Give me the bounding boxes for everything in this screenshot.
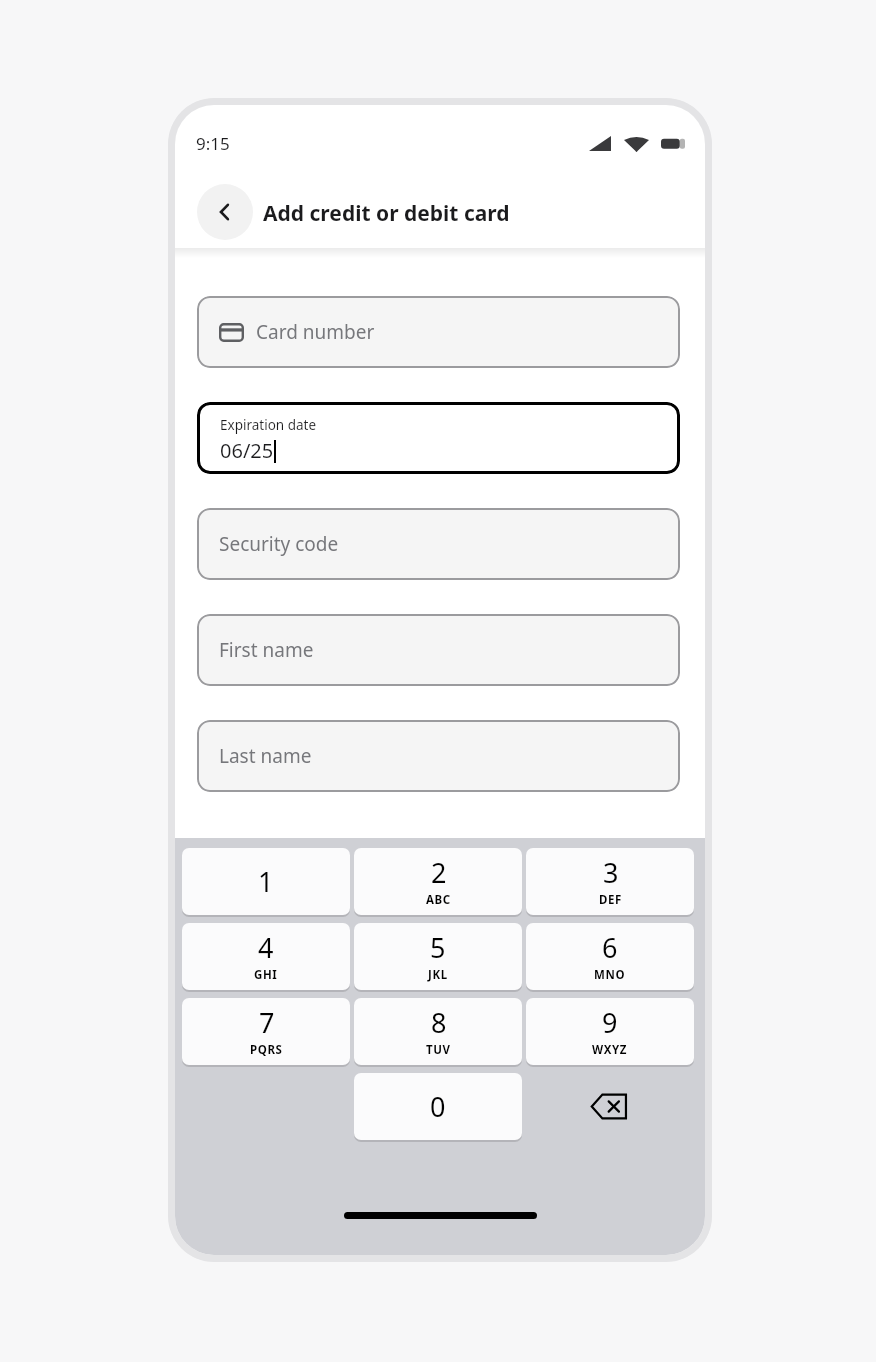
staticText: MNO xyxy=(594,967,626,983)
staticText: WXYZ xyxy=(592,1042,628,1058)
staticText: Expiration date xyxy=(220,416,317,434)
staticText: 06/25 xyxy=(220,437,274,464)
button[interactable]: 2 xyxy=(354,848,522,915)
staticText: Last name xyxy=(219,743,312,769)
staticText: 9 xyxy=(602,1004,618,1041)
button[interactable]: First name xyxy=(197,614,680,686)
staticText: 6 xyxy=(602,929,618,966)
staticText: ABC xyxy=(426,892,451,908)
staticText: GHI xyxy=(254,967,278,983)
button[interactable]: Back xyxy=(197,184,253,240)
staticText: 7 xyxy=(259,1004,275,1041)
button[interactable]: 5 xyxy=(354,923,522,990)
staticText: 9:15 xyxy=(196,132,230,155)
staticText: 4 xyxy=(258,929,274,966)
staticText: DEF xyxy=(599,892,622,908)
button[interactable]: Security code xyxy=(197,508,680,580)
staticText: Security code xyxy=(219,531,339,557)
staticText: JKL xyxy=(428,967,448,983)
button[interactable]: 3 xyxy=(526,848,694,915)
staticText: 1 xyxy=(258,863,274,900)
button[interactable]: 9 xyxy=(526,998,694,1065)
button[interactable]: 0 xyxy=(354,1073,522,1140)
staticText: PQRS xyxy=(250,1042,283,1058)
staticText: Card number xyxy=(256,319,375,345)
staticText: TUV xyxy=(426,1042,451,1058)
staticText: 0 xyxy=(430,1088,446,1125)
staticText: Add credit or debit card xyxy=(263,199,510,228)
staticText: 3 xyxy=(603,854,619,891)
button[interactable]: 1 xyxy=(182,848,350,915)
button[interactable]: 8 xyxy=(354,998,522,1065)
staticText: First name xyxy=(219,637,314,663)
button[interactable]: Card number xyxy=(197,296,680,368)
button[interactable]: 6 xyxy=(526,923,694,990)
staticText: 8 xyxy=(431,1004,447,1041)
button[interactable]: 4 xyxy=(182,923,350,990)
button[interactable]: Expiration date xyxy=(197,402,680,474)
button[interactable]: 7 xyxy=(182,998,350,1065)
button[interactable]: Backspace xyxy=(526,1073,694,1140)
staticText: 2 xyxy=(431,854,447,891)
button[interactable]: Last name xyxy=(197,720,680,792)
staticText: 5 xyxy=(430,929,446,966)
